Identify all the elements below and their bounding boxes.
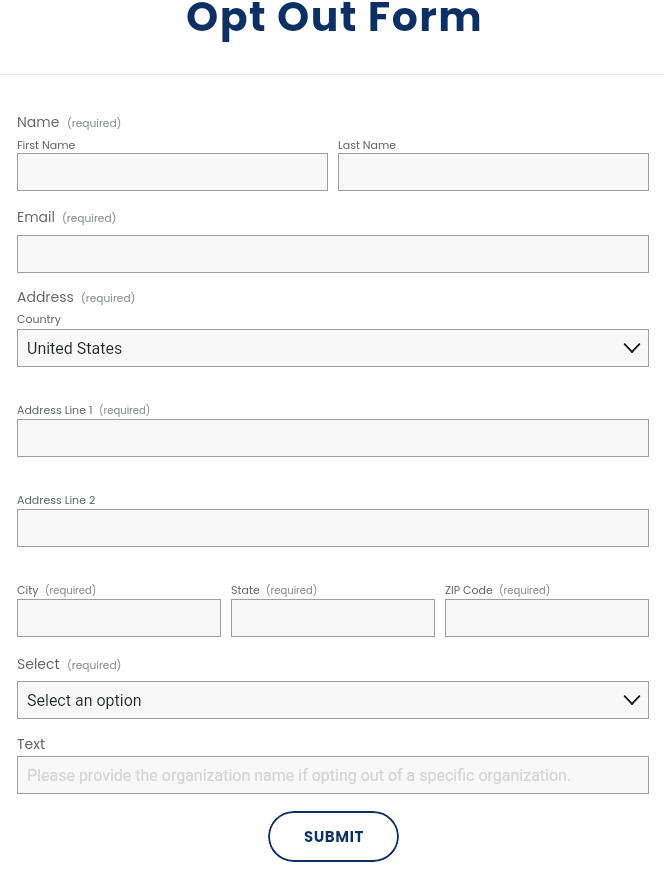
staticText: Address Line 2 (17, 492, 96, 507)
staticText: (required) (499, 583, 551, 597)
staticText: City (17, 582, 39, 597)
staticText: State (231, 582, 260, 597)
button[interactable] (17, 235, 649, 273)
staticText: First Name (17, 137, 76, 152)
button[interactable] (17, 599, 221, 637)
button[interactable] (17, 419, 649, 457)
staticText: (required) (67, 116, 122, 131)
button[interactable]: SUBMIT (268, 811, 399, 862)
button[interactable] (445, 599, 649, 637)
button[interactable] (17, 509, 649, 547)
button[interactable]: Country United States (17, 329, 649, 367)
staticText: ZIP Code (445, 582, 493, 597)
button[interactable] (231, 599, 435, 637)
staticText: (required) (266, 583, 318, 597)
staticText: United States (27, 339, 123, 358)
staticText: SUBMIT (304, 826, 364, 847)
button[interactable] (17, 153, 328, 191)
staticText: Please provide the organization name if … (27, 766, 572, 785)
staticText: Select (17, 654, 60, 674)
button[interactable]: Select an option (17, 681, 649, 719)
staticText: Opt Out Form (186, 0, 483, 45)
staticText: Select an option (27, 691, 142, 710)
staticText: (required) (45, 583, 97, 597)
staticText: (required) (81, 291, 136, 306)
staticText: (required) (62, 211, 117, 226)
staticText: Address Line 1 (17, 402, 93, 417)
staticText: Name (17, 112, 60, 132)
button[interactable]: Please provide the organization name if … (17, 756, 649, 794)
staticText: Last Name (338, 137, 397, 152)
staticText: (required) (67, 658, 122, 673)
staticText: Country (17, 311, 61, 326)
staticText: Text (17, 734, 46, 754)
staticText: Email (17, 207, 55, 227)
staticText: Address (17, 287, 74, 307)
staticText: (required) (99, 403, 151, 417)
button[interactable] (338, 153, 649, 191)
